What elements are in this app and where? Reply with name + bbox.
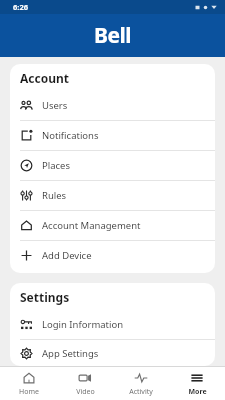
staticText: Rules <box>42 189 67 202</box>
staticText: Account Management <box>42 219 141 232</box>
staticText: Settings <box>20 289 70 305</box>
staticText: 6:26 <box>13 2 28 12</box>
staticText: Home <box>19 387 39 397</box>
staticText: Login Information <box>42 318 124 331</box>
staticText: Video <box>76 387 95 397</box>
staticText: Activity <box>129 387 153 397</box>
button[interactable]: Places <box>10 151 215 180</box>
staticText: Notifications <box>42 129 99 142</box>
staticText: More <box>188 387 207 397</box>
button[interactable]: Add Device <box>10 241 215 270</box>
button[interactable]: Notifications <box>10 121 215 150</box>
staticText: App Settings <box>42 347 99 360</box>
button[interactable]: Activity <box>113 367 169 400</box>
button[interactable]: Home <box>0 367 57 400</box>
button[interactable]: Account Management <box>10 211 215 240</box>
button[interactable]: Login Information <box>10 310 215 339</box>
button[interactable]: Rules <box>10 181 215 210</box>
button[interactable]: Video <box>57 367 113 400</box>
staticText: Users <box>42 99 68 112</box>
button[interactable]: More <box>169 367 225 400</box>
staticText: Add Device <box>42 249 92 262</box>
button[interactable]: Users <box>10 91 215 120</box>
button[interactable]: App Settings <box>10 340 215 366</box>
staticText: Bell <box>94 21 132 50</box>
staticText: Account <box>20 70 69 86</box>
staticText: Places <box>42 159 70 172</box>
